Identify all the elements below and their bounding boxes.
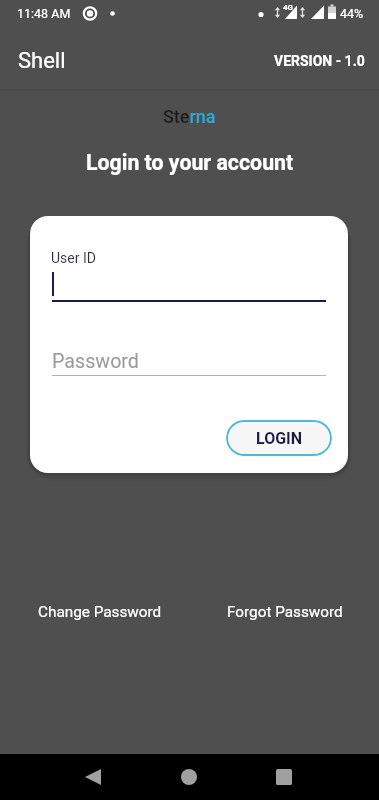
staticText: Login to your account [86,150,294,175]
button[interactable]: LOGIN [226,420,332,456]
staticText: User ID [51,250,96,266]
button[interactable]: Change Password [38,603,162,621]
button[interactable]: Back [73,757,113,797]
staticText: LOGIN [256,429,303,448]
staticText: Shell [18,48,66,74]
staticText: Password [52,350,139,373]
button[interactable]: Recents [264,757,304,797]
staticText: Sterna [163,106,216,127]
staticText: VERSION - 1.0 [274,53,365,69]
button[interactable]: Forgot Password [227,603,343,621]
staticText: 11:48 AM [17,6,71,21]
button[interactable]: Home [169,757,209,797]
staticText: 44% [340,6,364,21]
staticText: 4G [283,3,294,12]
